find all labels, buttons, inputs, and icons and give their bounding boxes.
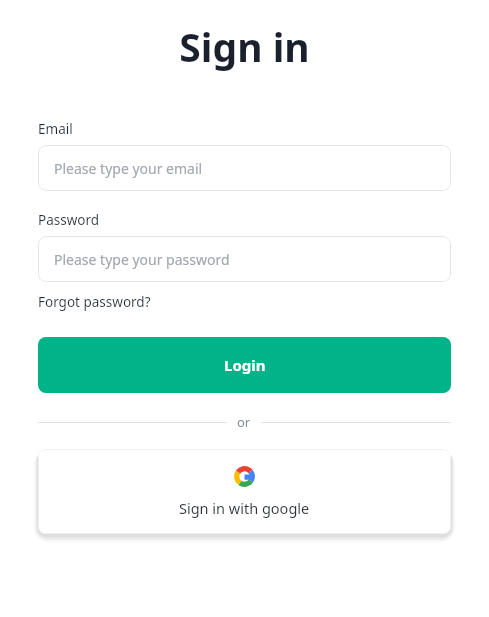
staticText: Sign in — [38, 20, 451, 73]
button[interactable]: Forgot password? — [38, 293, 151, 311]
button[interactable]: Sign in with google — [38, 449, 451, 534]
staticText: or — [237, 413, 251, 431]
staticText: Email — [38, 120, 73, 138]
staticText: Password — [38, 211, 100, 229]
staticText: Please type your email — [54, 159, 203, 178]
staticText: Sign in with google — [179, 498, 310, 518]
button[interactable]: Please type your password — [38, 236, 451, 282]
button[interactable]: Login — [38, 337, 451, 393]
staticText: Login — [224, 355, 266, 375]
staticText: Please type your password — [54, 250, 230, 269]
staticText: Forgot password? — [38, 293, 151, 311]
button[interactable]: Please type your email — [38, 145, 451, 191]
